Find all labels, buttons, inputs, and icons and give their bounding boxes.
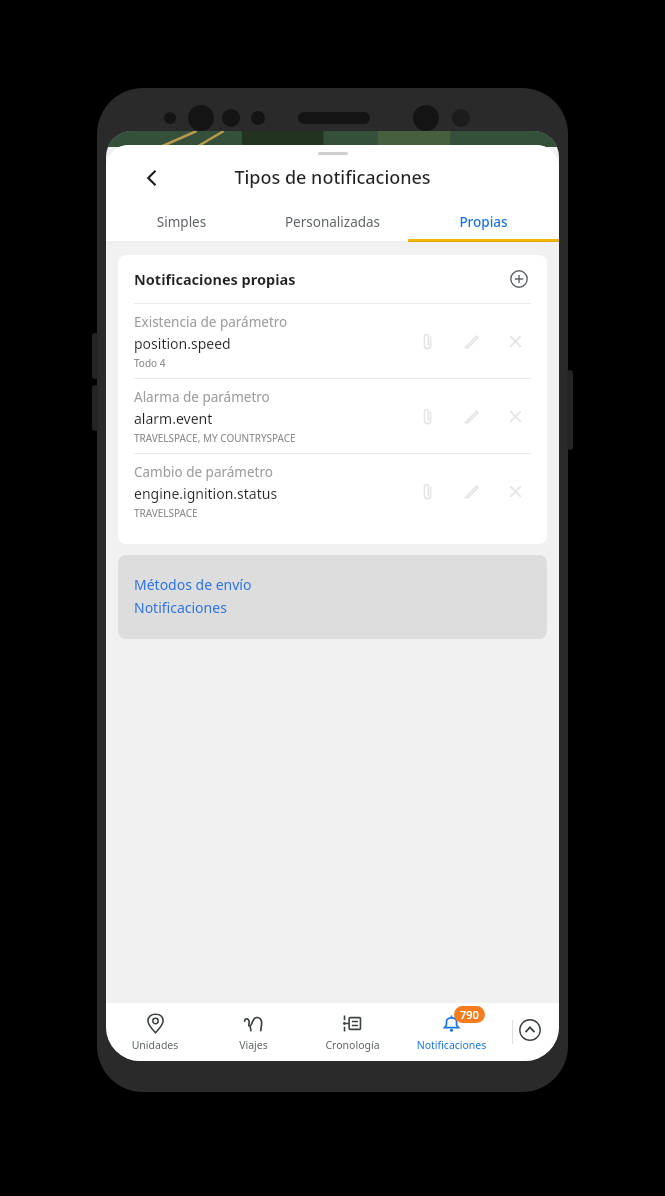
staticText: Propias [408, 213, 559, 231]
staticText: Notificaciones [402, 1038, 501, 1052]
button[interactable]: Cronología [303, 1003, 402, 1061]
staticText: TRAVELSPACE [134, 506, 198, 520]
staticText: 790 [460, 1007, 479, 1022]
staticText: position.speed [134, 334, 231, 353]
staticText: Métodos de envío [134, 575, 252, 594]
staticText: Cambio de parámetro [134, 463, 273, 481]
button[interactable]: Expand [514, 1014, 546, 1046]
staticText: Personalizadas [257, 213, 408, 231]
button[interactable]: Personalizadas [257, 202, 408, 242]
button[interactable]: Edit [449, 469, 493, 513]
staticText: Viajes [204, 1038, 303, 1052]
button[interactable]: Delete [493, 394, 537, 438]
staticText: TRAVELSPACE, MY COUNTRYSPACE [134, 431, 296, 445]
button[interactable]: Back [132, 158, 172, 198]
button[interactable]: Alarma de parámetro [118, 379, 547, 453]
button[interactable]: Existencia de parámetro [118, 304, 547, 378]
staticText: Notificaciones [134, 598, 227, 617]
staticText: alarm.event [134, 409, 213, 428]
button[interactable]: Propias [408, 202, 559, 242]
button[interactable]: Delete [493, 319, 537, 363]
button[interactable]: Attach [405, 469, 449, 513]
staticText: Existencia de parámetro [134, 313, 288, 331]
staticText: engine.ignition.status [134, 484, 278, 503]
button[interactable]: Add [503, 263, 535, 295]
button[interactable]: Attach [405, 319, 449, 363]
button[interactable]: Unidades [106, 1003, 204, 1061]
button[interactable]: Métodos de envío [118, 555, 547, 639]
button[interactable]: Attach [405, 394, 449, 438]
staticText: Unidades [106, 1038, 204, 1052]
staticText: Simples [106, 213, 257, 231]
staticText: Alarma de parámetro [134, 388, 270, 406]
staticText: Tipos de notificaciones [106, 165, 559, 190]
staticText: Cronología [303, 1038, 402, 1052]
button[interactable]: Delete [493, 469, 537, 513]
button[interactable]: Viajes [204, 1003, 303, 1061]
staticText: Notificaciones propias [134, 269, 503, 289]
staticText: Todo 4 [134, 356, 166, 370]
button[interactable]: Edit [449, 319, 493, 363]
button[interactable]: Cambio de parámetro [118, 454, 547, 528]
button[interactable]: 790 [402, 1003, 501, 1061]
button[interactable]: Edit [449, 394, 493, 438]
button[interactable]: Simples [106, 202, 257, 242]
